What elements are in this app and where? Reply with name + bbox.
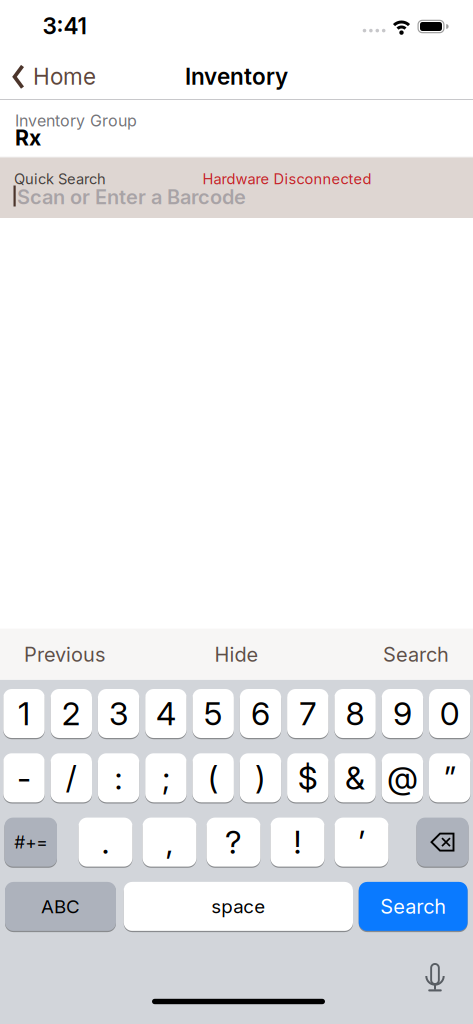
button[interactable]: & xyxy=(334,752,376,803)
button[interactable]: Delete xyxy=(416,817,468,868)
staticText: 3 xyxy=(109,695,128,732)
staticText: & xyxy=(345,759,365,797)
button[interactable]: Hide xyxy=(196,629,276,679)
staticText: ? xyxy=(225,823,242,861)
button[interactable]: Search xyxy=(289,629,449,679)
staticText: 3:41 xyxy=(42,13,86,39)
button[interactable]: Scan or Enter a Barcode xyxy=(0,158,473,218)
staticText: 7 xyxy=(299,695,316,732)
staticText: ( xyxy=(208,759,219,797)
staticText: 2 xyxy=(62,695,81,732)
staticText: ; xyxy=(162,759,170,797)
button[interactable]: space xyxy=(124,881,353,932)
staticText: ) xyxy=(255,759,266,797)
button[interactable]: . xyxy=(78,817,132,868)
button[interactable]: Back xyxy=(6,54,130,98)
button[interactable]: Previous xyxy=(24,629,184,679)
button[interactable]: - xyxy=(3,752,45,803)
staticText: 9 xyxy=(393,695,412,732)
button[interactable]: , xyxy=(142,817,196,868)
staticText: Inventory Group xyxy=(15,111,137,130)
button[interactable]: 2 xyxy=(51,688,92,739)
button[interactable]: 6 xyxy=(240,688,281,739)
staticText: Rx xyxy=(15,125,41,150)
staticText: ! xyxy=(293,823,301,861)
button[interactable]: 7 xyxy=(287,688,328,739)
button[interactable]: ABC xyxy=(5,881,116,932)
button[interactable]: ’ xyxy=(334,817,388,868)
staticText: : xyxy=(115,759,123,797)
staticText: Scan or Enter a Barcode xyxy=(17,185,246,209)
button[interactable]: ? xyxy=(206,817,260,868)
button[interactable]: ) xyxy=(240,752,281,803)
button[interactable]: 3 xyxy=(98,688,139,739)
staticText: 0 xyxy=(440,695,460,732)
button[interactable]: 8 xyxy=(334,688,376,739)
staticText: . xyxy=(101,823,109,861)
staticText: Search xyxy=(383,643,449,666)
staticText: 6 xyxy=(251,695,270,732)
staticText: Quick Search xyxy=(14,170,106,188)
button[interactable]: ” xyxy=(429,752,470,803)
button[interactable]: 5 xyxy=(192,688,234,739)
staticText: 4 xyxy=(156,695,176,732)
button[interactable]: ; xyxy=(145,752,187,803)
button[interactable]: 9 xyxy=(382,688,423,739)
staticText: - xyxy=(17,759,31,797)
button[interactable]: #+= xyxy=(4,817,57,868)
button[interactable]: 4 xyxy=(145,688,187,739)
button[interactable]: ( xyxy=(192,752,234,803)
staticText: 5 xyxy=(204,695,223,732)
button[interactable]: 0 xyxy=(429,688,470,739)
staticText: Inventory xyxy=(185,63,288,90)
staticText: 1 xyxy=(18,695,30,732)
button[interactable]: Search xyxy=(359,881,468,932)
staticText: ” xyxy=(444,759,456,797)
staticText: @ xyxy=(387,759,418,797)
staticText: , xyxy=(165,823,173,861)
staticText: Home xyxy=(33,63,96,90)
staticText: $ xyxy=(298,759,318,797)
button[interactable]: : xyxy=(98,752,139,803)
staticText: space xyxy=(211,895,265,917)
staticText: / xyxy=(66,759,77,797)
button[interactable]: ! xyxy=(270,817,324,868)
staticText: ’ xyxy=(358,823,365,861)
button[interactable]: Dictation xyxy=(420,962,450,996)
button[interactable]: / xyxy=(51,752,92,803)
staticText: #+= xyxy=(14,832,47,852)
staticText: Search xyxy=(380,895,446,918)
staticText: 8 xyxy=(346,695,365,732)
button[interactable]: $ xyxy=(287,752,328,803)
button[interactable]: 1 xyxy=(3,688,45,739)
button[interactable]: @ xyxy=(382,752,423,803)
staticText: Hardware Disconnected xyxy=(202,170,371,188)
staticText: ABC xyxy=(41,895,80,917)
staticText: Hide xyxy=(214,643,258,666)
staticText: Previous xyxy=(24,643,105,666)
